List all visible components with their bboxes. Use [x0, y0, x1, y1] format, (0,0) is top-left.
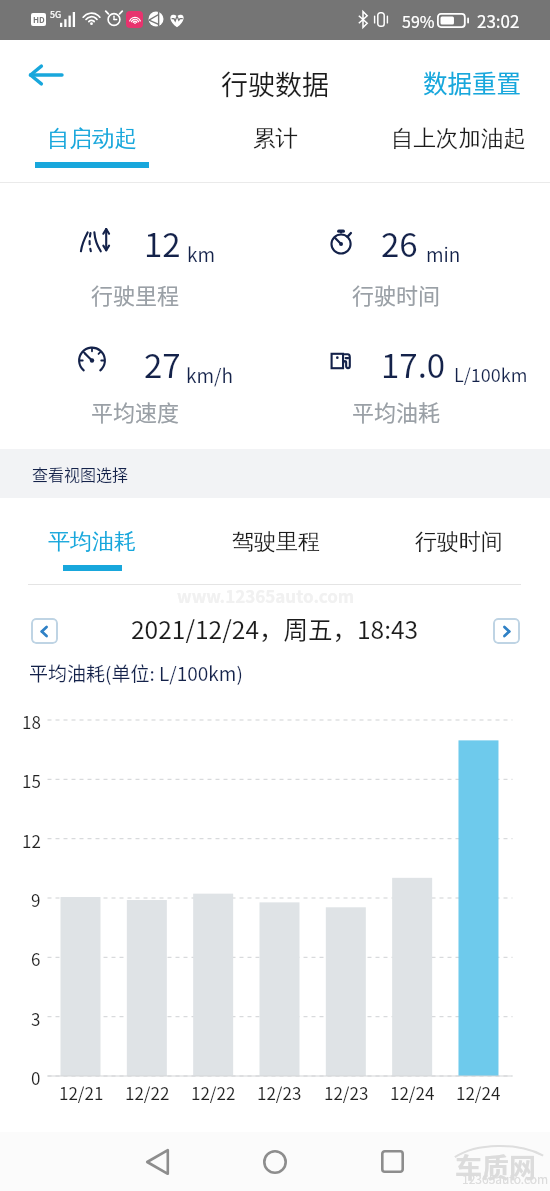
staticText: 17.0	[381, 340, 446, 388]
button[interactable]: 自启动起	[0, 0, 184, 1191]
staticText: 12/22	[125, 1080, 170, 1105]
staticText: 0	[31, 1065, 41, 1090]
button[interactable]: 数据重置	[415, 57, 529, 108]
staticText: 12/24	[456, 1080, 501, 1105]
staticText: 12/23	[257, 1080, 302, 1105]
staticText: 6	[31, 946, 41, 971]
button[interactable]	[65, 215, 285, 310]
staticText: www.12365auto.com	[177, 583, 355, 608]
button[interactable]: Previous	[31, 618, 58, 644]
staticText: 18	[22, 709, 41, 734]
staticText: 12	[144, 219, 181, 267]
staticText: 行驶数据	[221, 64, 329, 103]
staticText: 12	[22, 828, 41, 853]
button[interactable]: Home	[225, 1132, 325, 1191]
button[interactable]: 行驶时间	[367, 0, 550, 1191]
button[interactable]: Recents	[342, 1132, 442, 1191]
button[interactable]: Next	[493, 618, 520, 644]
staticText: 行驶时间	[352, 278, 441, 310]
staticText: 12/21	[59, 1080, 104, 1105]
staticText: 自上次加油起	[391, 124, 526, 152]
staticText: 59%	[402, 9, 435, 32]
button[interactable]: 驾驶里程	[184, 0, 367, 1191]
staticText: 12365auto.com	[462, 1170, 549, 1187]
button[interactable]: 累计	[184, 0, 367, 1191]
button[interactable]	[314, 214, 534, 309]
button[interactable]	[64, 335, 284, 430]
staticText: 12/24	[390, 1080, 435, 1105]
staticText: 累计	[253, 124, 298, 152]
staticText: 行驶时间	[415, 528, 503, 556]
staticText: 5G	[50, 8, 62, 21]
staticText: 驾驶里程	[232, 528, 320, 556]
staticText: 2021/12/24，周五，18:43	[131, 611, 419, 646]
staticText: 26	[381, 219, 418, 267]
staticText: km/h	[186, 361, 234, 389]
staticText: 平均速度	[91, 395, 180, 427]
staticText: km	[187, 240, 216, 268]
staticText: 自启动起	[47, 124, 137, 152]
staticText: 数据重置	[423, 65, 521, 100]
button[interactable]: Back	[20, 49, 72, 101]
staticText: 行驶里程	[91, 278, 180, 310]
button[interactable]	[315, 337, 535, 432]
staticText: 平均油耗	[48, 528, 136, 556]
staticText: 9	[31, 887, 41, 912]
button[interactable]: 自上次加油起	[367, 0, 550, 1191]
staticText: 平均油耗(单位: L/100km)	[29, 659, 243, 687]
staticText: 平均油耗	[352, 395, 441, 427]
staticText: 查看视图选择	[32, 462, 129, 485]
staticText: min	[426, 240, 461, 268]
staticText: 12/23	[324, 1080, 369, 1105]
button[interactable]: Back	[107, 1132, 207, 1191]
staticText: HD	[33, 14, 45, 26]
staticText: L/100km	[454, 361, 528, 387]
staticText: 15	[22, 768, 41, 793]
staticText: 12/22	[191, 1080, 236, 1105]
staticText: 3	[31, 1006, 41, 1031]
button[interactable]: 平均油耗	[0, 0, 184, 1191]
button[interactable]: 查看视图选择	[0, 449, 550, 498]
staticText: 23:02	[477, 8, 520, 33]
staticText: 车质网	[455, 1147, 536, 1186]
staticText: 27	[144, 340, 181, 388]
